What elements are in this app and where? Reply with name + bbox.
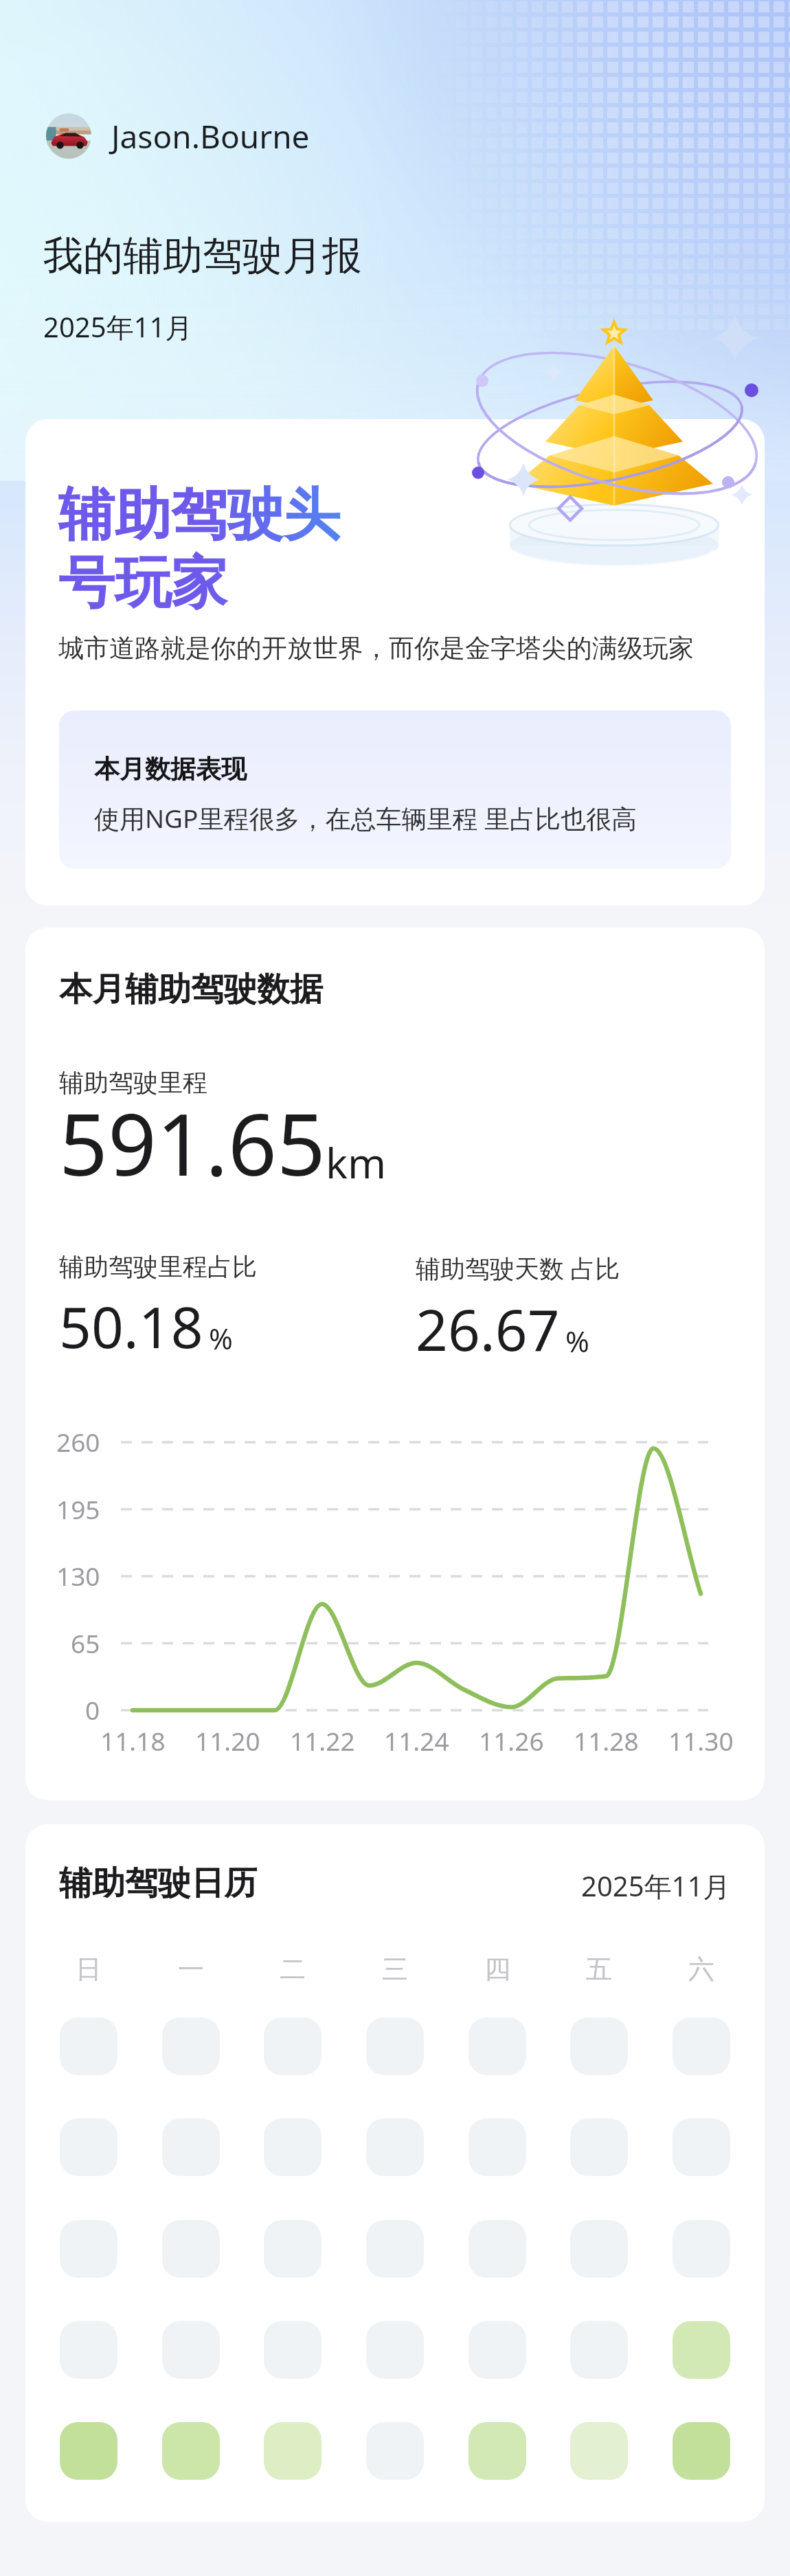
staticText: 号玩家 <box>58 548 227 618</box>
button[interactable] <box>570 2220 628 2278</box>
staticText: 50.18 <box>59 1288 203 1365</box>
button[interactable] <box>469 2118 526 2176</box>
staticText: Jason.Bourne <box>111 115 310 158</box>
button[interactable] <box>60 2321 117 2379</box>
button[interactable] <box>469 2422 526 2480</box>
button[interactable] <box>162 2017 220 2075</box>
staticText: 日 <box>76 1953 102 1986</box>
staticText: 130 <box>56 1558 100 1593</box>
staticText: 11.22 <box>290 1723 355 1758</box>
staticText: 11.30 <box>668 1723 734 1758</box>
button[interactable] <box>366 2017 424 2075</box>
staticText: 11.18 <box>100 1723 166 1758</box>
staticText: 260 <box>56 1424 100 1459</box>
button[interactable] <box>60 2220 117 2278</box>
staticText: 2025年11月 <box>43 308 193 346</box>
staticText: 195 <box>56 1492 100 1526</box>
button[interactable] <box>366 2321 424 2379</box>
staticText: 五 <box>586 1953 612 1986</box>
staticText: 本月辅助驾驶数据 <box>59 969 323 1010</box>
button[interactable] <box>162 2321 220 2379</box>
button[interactable] <box>673 2220 730 2278</box>
button[interactable] <box>162 2422 220 2480</box>
button[interactable] <box>366 2118 424 2176</box>
staticText: 26.67 <box>416 1290 560 1367</box>
button[interactable] <box>60 2118 117 2176</box>
staticText: 二 <box>280 1953 306 1986</box>
staticText: 0 <box>85 1692 100 1727</box>
button[interactable] <box>673 2118 730 2176</box>
staticText: % <box>209 1319 233 1358</box>
button[interactable] <box>570 2321 628 2379</box>
button[interactable] <box>162 2220 220 2278</box>
staticText: 本月数据表现 <box>94 753 247 785</box>
staticText: 使用NGP里程很多，在总车辆里程 里占比也很高 <box>94 800 637 836</box>
staticText: 11.28 <box>574 1723 639 1758</box>
button[interactable] <box>264 2118 321 2176</box>
staticText: 辅助驾驶天数 占比 <box>416 1251 620 1285</box>
button[interactable] <box>366 2422 424 2480</box>
staticText: 四 <box>484 1953 510 1986</box>
staticText: 11.24 <box>384 1723 449 1758</box>
button[interactable] <box>264 2220 321 2278</box>
button[interactable] <box>60 2422 117 2480</box>
button[interactable] <box>673 2017 730 2075</box>
staticText: % <box>565 1321 589 1360</box>
button[interactable] <box>264 2321 321 2379</box>
staticText: 65 <box>71 1626 100 1660</box>
staticText: 城市道路就是你的开放世界，而你是金字塔尖的满级玩家 <box>58 632 694 664</box>
staticText: 辅助驾驶日历 <box>59 1863 257 1904</box>
staticText: 一 <box>178 1953 204 1986</box>
staticText: 11.20 <box>195 1723 260 1758</box>
button[interactable] <box>570 2422 628 2480</box>
button[interactable] <box>673 2422 730 2480</box>
button[interactable] <box>264 2017 321 2075</box>
button[interactable] <box>162 2118 220 2176</box>
staticText: 三 <box>382 1953 408 1986</box>
button[interactable] <box>469 2220 526 2278</box>
button[interactable] <box>60 2017 117 2075</box>
button[interactable] <box>469 2017 526 2075</box>
staticText: 辅助驾驶里程 <box>59 1067 207 1098</box>
staticText: 六 <box>688 1953 714 1986</box>
staticText: km <box>326 1134 387 1191</box>
button[interactable] <box>570 2017 628 2075</box>
button[interactable] <box>469 2321 526 2379</box>
button[interactable] <box>366 2220 424 2278</box>
button[interactable]: Jason.Bourne <box>46 113 310 159</box>
staticText: 辅助驾驶头 <box>58 480 340 550</box>
staticText: 11.26 <box>479 1723 544 1758</box>
button[interactable] <box>673 2321 730 2379</box>
button[interactable] <box>570 2118 628 2176</box>
staticText: 591.65 <box>59 1084 326 1200</box>
staticText: 辅助驾驶里程占比 <box>59 1251 257 1282</box>
staticText: 2025年11月 <box>581 1867 731 1905</box>
staticText: 我的辅助驾驶月报 <box>43 231 362 281</box>
button[interactable] <box>264 2422 321 2480</box>
